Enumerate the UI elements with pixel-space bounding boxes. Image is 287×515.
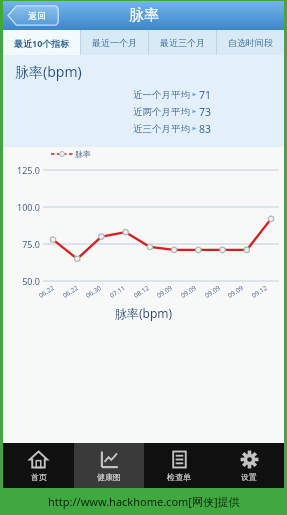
staticText: 脉率(bpm) (115, 305, 173, 321)
staticText: 125.0 (7, 164, 40, 176)
staticText: 50.0 (7, 275, 40, 287)
staticText: 脉率(bpm) (15, 62, 82, 81)
staticText: 最近10个指标 (14, 37, 70, 49)
staticText: 09.09 (203, 283, 222, 300)
staticText: 近两个月平均 (133, 106, 190, 118)
button[interactable]: 返回 (7, 5, 59, 26)
staticText: 83 (199, 122, 212, 136)
staticText: 100.0 (7, 201, 40, 213)
button[interactable]: 最近三个月 (149, 30, 216, 55)
staticText: 71 (199, 88, 212, 102)
button[interactable]: 最近一个月 (81, 30, 148, 55)
staticText: 最近三个月 (160, 37, 205, 48)
button[interactable]: 自选时间段 (217, 30, 284, 55)
staticText: 近一个月平均 (133, 89, 190, 101)
staticText: 健康图 (97, 472, 121, 482)
staticText: 检查单 (167, 472, 191, 482)
staticText: 脉率 (75, 149, 91, 159)
staticText: 09.09 (155, 283, 174, 300)
staticText: 06.22 (37, 283, 56, 300)
staticText: 首页 (31, 472, 47, 482)
button[interactable]: 最近10个指标 (3, 30, 80, 55)
button[interactable]: 健康图 (74, 443, 144, 488)
button[interactable]: 设置 (214, 443, 284, 488)
staticText: 07.11 (108, 283, 127, 300)
staticText: 自选时间段 (228, 37, 273, 48)
staticText: 最近一个月 (92, 37, 137, 48)
staticText: 09.09 (226, 283, 245, 300)
staticText: 返回 (28, 10, 46, 21)
staticText: 08.12 (132, 283, 151, 300)
staticText: 脉率 (129, 6, 159, 25)
staticText: 09.09 (179, 283, 198, 300)
staticText: 近三个月平均 (133, 123, 190, 135)
staticText: 设置 (241, 472, 257, 482)
button[interactable]: 首页 (3, 443, 74, 488)
staticText: 73 (199, 105, 212, 119)
staticText: 75.0 (7, 238, 40, 250)
staticText: 09.12 (250, 283, 269, 300)
button[interactable]: 检查单 (144, 443, 214, 488)
staticText: 06.30 (84, 283, 103, 300)
staticText: http://www.hackhome.com[网侠]提供 (48, 494, 240, 509)
staticText: 06.22 (61, 283, 80, 300)
